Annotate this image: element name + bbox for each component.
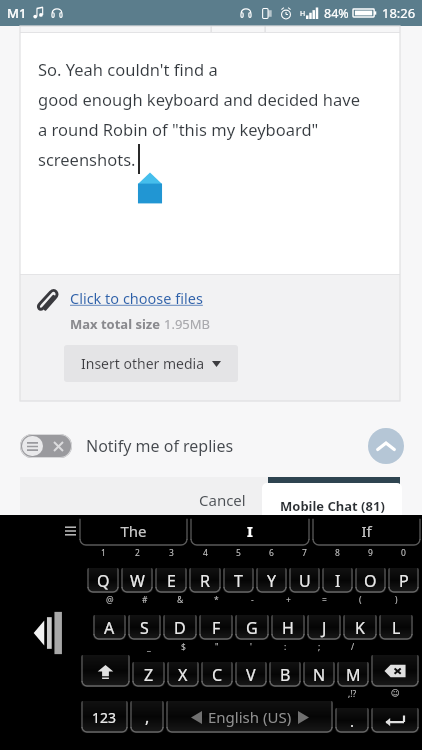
- staticText: K: [355, 617, 365, 639]
- staticText: ,!?: [348, 688, 357, 700]
- staticText: 2: [135, 547, 140, 559]
- button[interactable]: F: [199, 615, 233, 640]
- button[interactable]: G: [235, 615, 269, 640]
- button[interactable]: Insert other media: [64, 345, 238, 382]
- staticText: B: [280, 664, 291, 686]
- staticText: M1: [7, 4, 27, 22]
- button[interactable]: .: [335, 708, 369, 733]
- staticText: If: [361, 521, 372, 541]
- staticText: #: [142, 594, 148, 606]
- button[interactable]: D: [163, 615, 197, 640]
- button[interactable]: I: [190, 515, 310, 547]
- button[interactable]: Notify me of replies toggle: [20, 434, 72, 458]
- staticText: 84%: [324, 5, 349, 22]
- button[interactable]: S: [128, 615, 161, 640]
- button[interactable]: W: [121, 568, 153, 593]
- button[interactable]: C: [201, 662, 233, 687]
- staticText: ': [250, 641, 252, 653]
- staticText: U: [299, 570, 311, 592]
- staticText: *: [214, 594, 219, 606]
- staticText: Mobile Chat (81): [280, 497, 385, 515]
- staticText: 7: [302, 547, 307, 559]
- staticText: ): [395, 594, 398, 606]
- staticText: L: [392, 617, 401, 639]
- button[interactable]: [81, 655, 130, 687]
- staticText: Click to choose files: [70, 288, 207, 308]
- staticText: 1: [101, 547, 106, 559]
- button[interactable]: Y: [256, 568, 287, 593]
- button[interactable]: I: [322, 568, 353, 593]
- button[interactable]: ,: [130, 701, 164, 733]
- button[interactable]: B: [269, 662, 301, 687]
- button[interactable]: If: [312, 515, 421, 547]
- button[interactable]: P: [388, 568, 419, 593]
- staticText: O: [364, 570, 377, 592]
- button[interactable]: Submit: [268, 477, 400, 522]
- staticText: @: [106, 594, 114, 606]
- button[interactable]: E: [155, 568, 187, 593]
- staticText: I: [335, 570, 341, 592]
- button[interactable]: Q: [87, 568, 119, 593]
- staticText: Max total size: [70, 315, 164, 333]
- staticText: .: [350, 711, 355, 731]
- button[interactable]: L: [379, 615, 413, 640]
- staticText: ;: [318, 641, 321, 653]
- button[interactable]: J: [307, 615, 341, 640]
- staticText: English (US): [208, 707, 292, 727]
- button[interactable]: English (US): [166, 701, 333, 733]
- staticText: W: [130, 570, 145, 592]
- staticText: V: [246, 664, 256, 686]
- staticText: good enough keyboard and decided have: [38, 88, 360, 110]
- button[interactable]: A: [93, 615, 126, 640]
- button[interactable]: [371, 708, 419, 733]
- staticText: Q: [97, 570, 110, 592]
- button[interactable]: V: [235, 662, 267, 687]
- staticText: 4: [203, 547, 208, 559]
- button[interactable]: Mobile Chat (81): [262, 483, 402, 528]
- staticText: The: [120, 521, 147, 541]
- button[interactable]: [371, 655, 419, 687]
- button[interactable]: Cancel: [177, 480, 268, 520]
- staticText: =: [322, 594, 327, 606]
- button[interactable]: 123: [81, 701, 128, 733]
- staticText: Cancel: [199, 490, 246, 510]
- staticText: 8: [335, 547, 340, 559]
- staticText: X: [178, 664, 188, 686]
- staticText: a round Robin of "this my keyboard": [38, 118, 319, 140]
- staticText: S: [140, 617, 149, 639]
- staticText: D: [174, 617, 186, 639]
- staticText: M: [346, 664, 361, 686]
- button[interactable]: So. Yeah couldn't find a: [20, 33, 400, 274]
- staticText: /: [351, 641, 355, 653]
- staticText: 0: [401, 547, 406, 559]
- staticText: J: [322, 617, 327, 639]
- staticText: I: [247, 521, 253, 541]
- staticText: H: [300, 9, 306, 19]
- button[interactable]: R: [189, 568, 221, 593]
- button[interactable]: Click to choose files: [70, 288, 207, 308]
- staticText: 5: [236, 547, 241, 559]
- button[interactable]: H: [271, 615, 305, 640]
- staticText: G: [246, 617, 258, 639]
- button[interactable]: T: [223, 568, 254, 593]
- staticText: Y: [267, 570, 277, 592]
- staticText: screenshots.: [38, 148, 136, 170]
- button[interactable]: U: [289, 568, 320, 593]
- button[interactable]: K: [343, 615, 377, 640]
- button[interactable]: M: [337, 662, 369, 687]
- staticText: _: [147, 641, 151, 653]
- button[interactable]: Collapse keyboard: [32, 609, 66, 657]
- staticText: ☺: [391, 688, 400, 698]
- staticText: A: [104, 617, 115, 639]
- button[interactable]: O: [355, 568, 386, 593]
- button[interactable]: X: [167, 662, 199, 687]
- staticText: ,: [145, 706, 150, 728]
- button[interactable]: The: [79, 515, 188, 547]
- staticText: C: [212, 664, 223, 686]
- staticText: P: [399, 570, 409, 592]
- button[interactable]: Keyboard menu: [62, 515, 78, 547]
- button[interactable]: N: [303, 662, 335, 687]
- staticText: (: [359, 594, 362, 606]
- button[interactable]: Z: [132, 662, 165, 687]
- button[interactable]: Scroll to top: [368, 428, 404, 464]
